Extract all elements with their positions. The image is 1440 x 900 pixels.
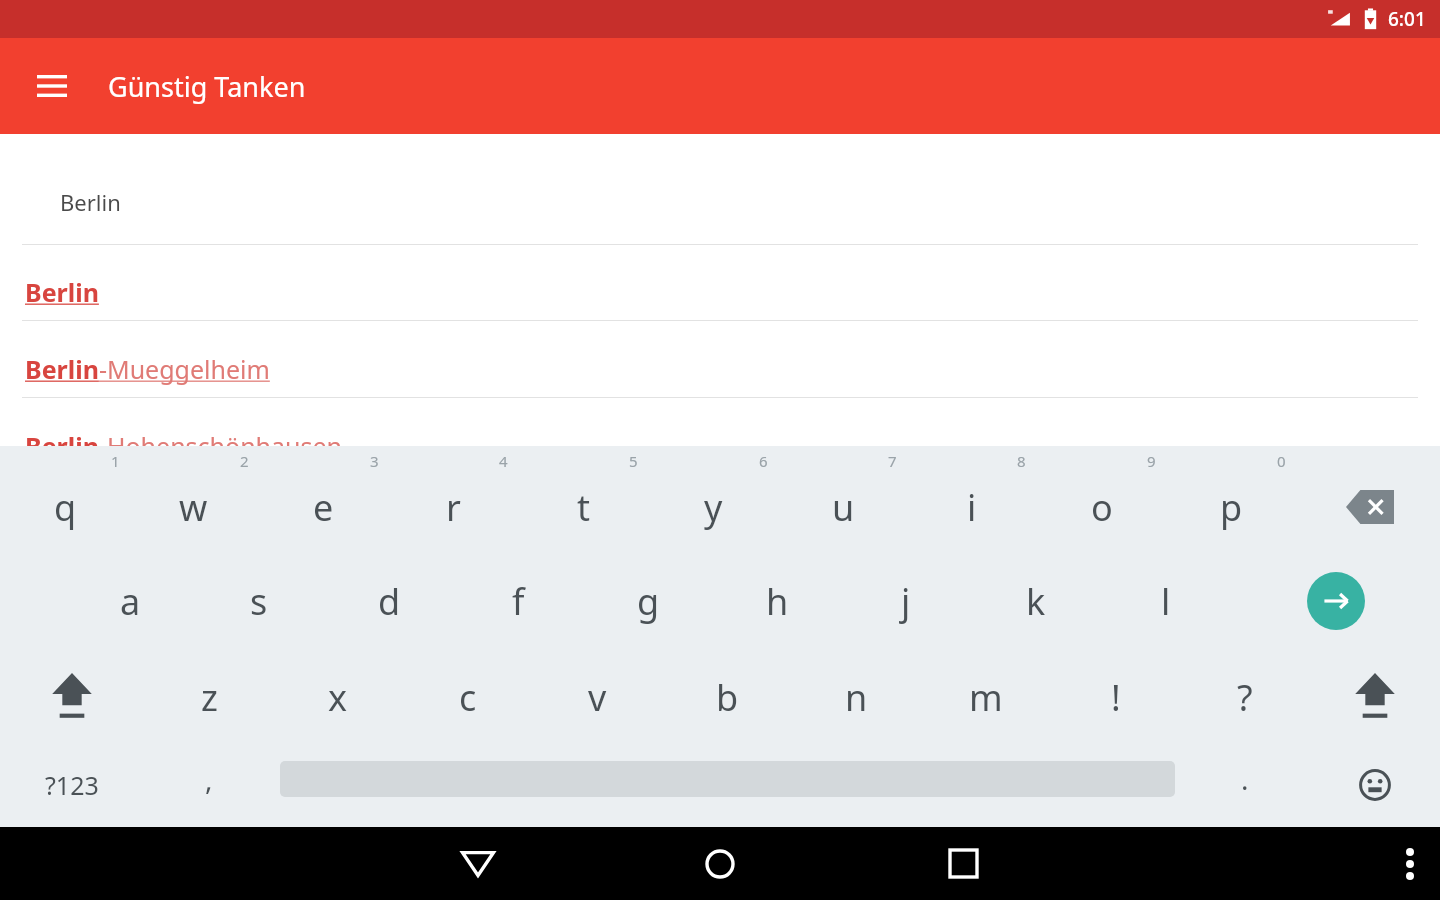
- button[interactable]: Open navigation menu: [24, 58, 80, 114]
- staticText: k: [1026, 577, 1046, 626]
- staticText: t: [577, 483, 590, 532]
- button[interactable]: z: [145, 658, 273, 736]
- button[interactable]: r: [389, 468, 517, 546]
- button[interactable]: l: [1102, 562, 1230, 640]
- button[interactable]: b: [663, 658, 791, 736]
- button[interactable]: o: [1038, 468, 1166, 546]
- button[interactable]: Enter: [1272, 562, 1400, 640]
- staticText: b: [716, 673, 739, 722]
- button[interactable]: Backspace: [1306, 468, 1434, 546]
- button[interactable]: d: [325, 562, 453, 640]
- button[interactable]: x: [274, 658, 402, 736]
- staticText: ,: [205, 760, 213, 798]
- staticText: z: [201, 673, 218, 722]
- button[interactable]: .: [1181, 752, 1309, 818]
- staticText: y: [704, 483, 723, 532]
- staticText: 9: [1147, 451, 1156, 471]
- staticText: Berlin: [60, 187, 121, 217]
- button[interactable]: Berlin-Hohenschönhausen: [0, 420, 1440, 472]
- button[interactable]: Back: [440, 827, 516, 900]
- button[interactable]: Shift: [8, 658, 136, 736]
- staticText: o: [1091, 483, 1113, 532]
- staticText: 0: [1277, 451, 1286, 471]
- staticText: !: [1111, 673, 1121, 722]
- staticText: l: [1161, 577, 1171, 626]
- staticText: j: [901, 577, 911, 626]
- button[interactable]: e: [259, 468, 387, 546]
- button[interactable]: Recent apps: [925, 827, 1001, 900]
- button[interactable]: a: [66, 562, 194, 640]
- button[interactable]: y: [649, 468, 777, 546]
- button[interactable]: !: [1052, 658, 1180, 736]
- staticText: 3: [370, 451, 379, 471]
- staticText: i: [967, 483, 977, 532]
- button[interactable]: u: [779, 468, 907, 546]
- button[interactable]: g: [584, 562, 712, 640]
- button[interactable]: v: [533, 658, 661, 736]
- staticText: f: [512, 577, 525, 626]
- staticText: Günstig Tanken: [108, 68, 306, 105]
- button[interactable]: n: [792, 658, 920, 736]
- button[interactable]: Berlin: [0, 266, 1440, 318]
- staticText: 8: [1017, 451, 1026, 471]
- staticText: v: [588, 673, 607, 722]
- staticText: ?123: [45, 768, 99, 802]
- staticText: g: [637, 577, 660, 626]
- staticText: c: [459, 673, 477, 722]
- button[interactable]: k: [972, 562, 1100, 640]
- staticText: a: [120, 577, 141, 626]
- button[interactable]: ?: [1181, 658, 1309, 736]
- button[interactable]: w: [129, 468, 257, 546]
- staticText: 4: [499, 451, 508, 471]
- button[interactable]: Berlin-Mueggelheim: [0, 343, 1440, 395]
- button[interactable]: Shift: [1311, 658, 1439, 736]
- button[interactable]: ?123: [8, 752, 136, 818]
- staticText: Berlin: [25, 275, 99, 309]
- staticText: m: [969, 673, 1003, 722]
- staticText: x: [328, 673, 348, 722]
- staticText: 7: [888, 451, 897, 471]
- button[interactable]: m: [922, 658, 1050, 736]
- staticText: .: [1241, 760, 1249, 798]
- button[interactable]: j: [842, 562, 970, 640]
- button[interactable]: q: [1, 468, 129, 546]
- staticText: ?: [1237, 673, 1253, 722]
- staticText: 5: [629, 451, 638, 471]
- button[interactable]: c: [404, 658, 532, 736]
- button[interactable]: More options: [1380, 827, 1440, 900]
- button[interactable]: Home: [682, 827, 758, 900]
- staticText: n: [845, 673, 868, 722]
- staticText: Berlin-Mueggelheim: [25, 352, 270, 386]
- staticText: Berlin-Hohenschönhausen: [25, 429, 343, 463]
- staticText: q: [54, 483, 77, 532]
- staticText: u: [832, 483, 855, 532]
- staticText: 6:01: [1388, 6, 1426, 32]
- button[interactable]: t: [519, 468, 647, 546]
- staticText: 6: [759, 451, 768, 471]
- button[interactable]: Emoji: [1311, 752, 1439, 818]
- staticText: 2: [240, 451, 249, 471]
- staticText: s: [250, 577, 268, 626]
- staticText: w: [179, 483, 208, 532]
- staticText: d: [378, 577, 401, 626]
- button[interactable]: h: [713, 562, 841, 640]
- staticText: 1: [111, 451, 120, 471]
- staticText: e: [313, 483, 334, 532]
- staticText: r: [446, 483, 461, 532]
- button[interactable]: ,: [145, 752, 273, 818]
- button[interactable]: s: [195, 562, 323, 640]
- button[interactable]: f: [454, 562, 582, 640]
- button[interactable]: i: [908, 468, 1036, 546]
- button[interactable]: p: [1167, 468, 1295, 546]
- staticText: p: [1220, 483, 1243, 532]
- staticText: h: [766, 577, 789, 626]
